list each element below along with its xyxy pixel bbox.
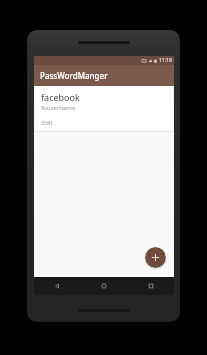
staticText: PassWordManger <box>40 70 108 81</box>
button[interactable]: PassWordManger <box>34 65 174 86</box>
staticText: Edit <box>42 119 53 127</box>
staticText: facebook <box>41 91 80 103</box>
button[interactable]: Back <box>34 277 80 295</box>
button[interactable]: facebook <box>35 87 173 131</box>
staticText: 11:19 <box>159 57 172 64</box>
button[interactable]: Home <box>80 277 127 295</box>
button[interactable]: Edit <box>41 118 54 128</box>
button[interactable]: Add password <box>145 247 166 268</box>
staticText: fbusername <box>41 104 76 112</box>
button[interactable]: Recent apps <box>127 277 174 295</box>
